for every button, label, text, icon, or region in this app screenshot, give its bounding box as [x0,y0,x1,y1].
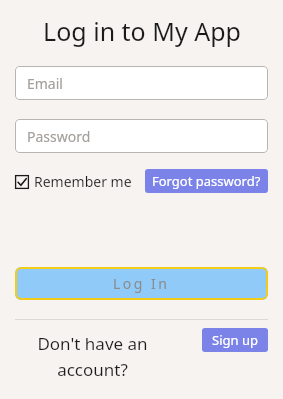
button[interactable]: Log In [15,267,268,300]
button[interactable]: Remember me [15,172,132,191]
staticText: Remember me [34,172,132,191]
staticText: Log In [113,274,170,293]
button[interactable]: Sign up [202,328,268,352]
button[interactable]: Password [15,119,268,153]
button[interactable]: Email [15,66,268,100]
staticText: Email [27,74,63,93]
staticText: Forgot password? [152,172,261,190]
staticText: Don't have an account? [15,332,170,381]
staticText: Password [27,127,91,146]
button[interactable]: Forgot password? [145,169,268,193]
staticText: Sign up [212,331,258,349]
staticText: Log in to My App [43,14,241,48]
